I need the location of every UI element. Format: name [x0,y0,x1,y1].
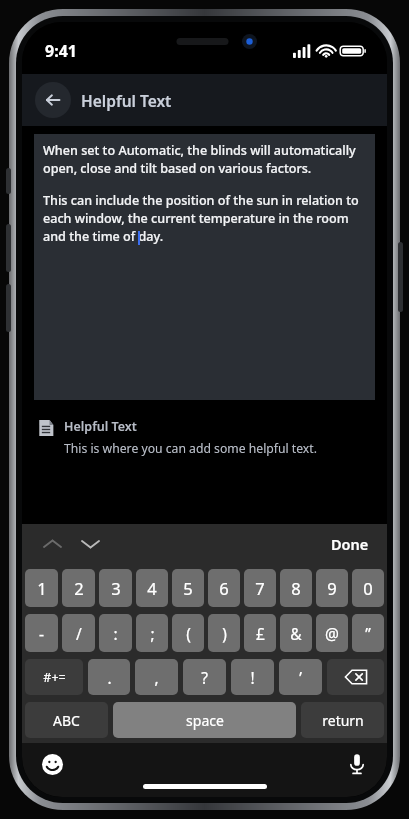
staticText: return [322,711,364,730]
button[interactable]: ’ [279,659,322,695]
button[interactable]: 7 [244,569,276,607]
staticText: 9:41 [45,40,77,62]
button[interactable]: When set to Automatic, the blinds will a… [34,134,375,400]
button[interactable]: 8 [280,569,312,607]
button[interactable]: ABC [25,702,108,738]
staticText: ABC [53,711,80,730]
staticText: 1 [37,577,47,599]
button[interactable]: ( [172,614,204,652]
staticText: 5 [183,577,193,599]
button[interactable]: Done [327,530,373,558]
staticText: 4 [147,577,157,599]
button[interactable]: 4 [136,569,168,607]
staticText: £ [256,623,265,644]
button[interactable]: 6 [208,569,240,607]
button[interactable]: 0 [352,569,384,607]
staticText: This is where you can add some helpful t… [64,440,317,457]
staticText: space [186,711,224,730]
button[interactable]: 5 [172,569,204,607]
button[interactable]: Back [35,82,71,118]
staticText: 7 [255,577,265,599]
button[interactable]: Emoji [37,749,67,779]
staticText: ” [365,623,371,644]
button[interactable]: ? [183,659,226,695]
staticText: ’ [299,667,302,688]
staticText: #+= [43,669,66,686]
button[interactable]: . [88,659,130,695]
button[interactable]: : [99,614,132,652]
button[interactable]: - [25,614,58,652]
staticText: Helpful Text [81,90,172,111]
button[interactable]: Dictation [342,749,372,779]
button[interactable]: ” [352,614,384,652]
staticText: 0 [363,577,373,599]
button[interactable]: 2 [62,569,95,607]
button[interactable]: return [301,702,384,738]
staticText: @ [325,623,339,644]
staticText: ; [150,623,155,644]
staticText: & [290,623,302,644]
staticText: When set to Automatic, the blinds will a… [43,142,366,177]
button[interactable]: #+= [25,659,83,695]
button[interactable]: Previous field [36,528,68,560]
staticText: ) [222,623,227,644]
button[interactable]: Next field [74,528,106,560]
button[interactable]: @ [316,614,348,652]
staticText: 8 [291,577,301,599]
button[interactable]: ) [208,614,240,652]
staticText: 6 [219,577,229,599]
staticText: This can include the position of the sun… [43,192,366,245]
button[interactable]: , [135,659,178,695]
staticText: 9 [327,577,337,599]
staticText: ! [250,667,255,688]
staticText: ? [201,667,208,688]
button[interactable]: 3 [99,569,132,607]
button[interactable]: £ [244,614,276,652]
staticText: 3 [111,577,121,599]
staticText: 2 [74,577,84,599]
staticText: - [39,623,44,644]
button[interactable]: & [280,614,312,652]
staticText: ( [186,623,191,644]
button[interactable]: / [62,614,95,652]
staticText: : [113,623,118,644]
button[interactable]: ; [136,614,168,652]
button[interactable]: ! [231,659,274,695]
button[interactable]: space [113,702,296,738]
staticText: . [107,667,112,688]
staticText: Done [331,534,369,554]
button[interactable]: 9 [316,569,348,607]
button[interactable]: 1 [25,569,58,607]
staticText: Helpful Text [64,418,137,435]
staticText: , [154,667,159,688]
button[interactable]: Backspace [327,659,384,695]
staticText: / [76,623,82,644]
